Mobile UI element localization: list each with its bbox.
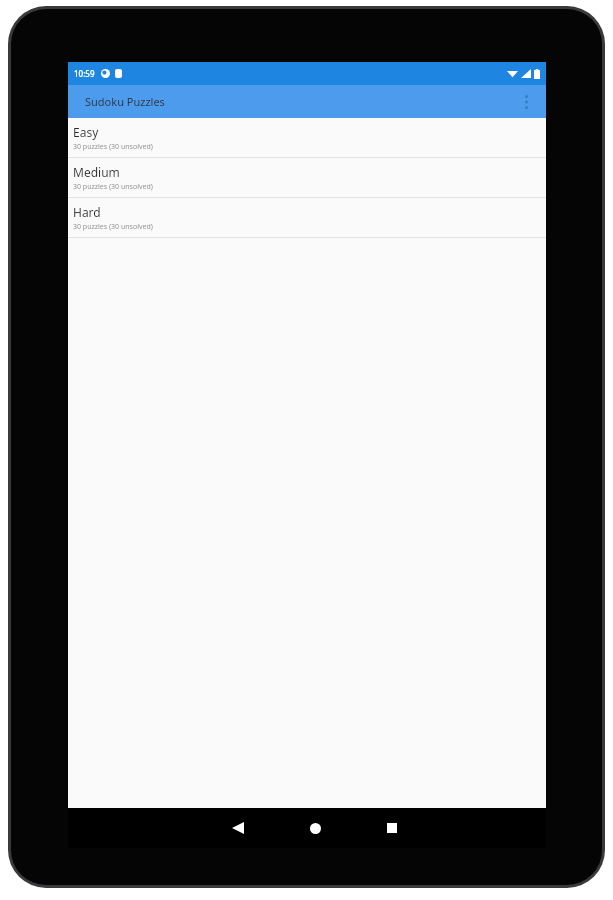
button[interactable]: Recent apps xyxy=(372,808,412,848)
staticText: Medium xyxy=(73,164,120,180)
button[interactable]: More options xyxy=(510,85,543,118)
staticText: 30 puzzles (30 unsolved) xyxy=(73,222,153,232)
button[interactable]: Medium xyxy=(68,158,546,198)
button[interactable]: Hard xyxy=(68,198,546,238)
button[interactable]: Home xyxy=(295,808,335,848)
staticText: 30 puzzles (30 unsolved) xyxy=(73,142,153,152)
staticText: 10:59 xyxy=(74,68,95,79)
button[interactable]: Easy xyxy=(68,118,546,158)
staticText: Sudoku Puzzles xyxy=(85,94,165,109)
button[interactable]: Back xyxy=(218,808,258,848)
staticText: 30 puzzles (30 unsolved) xyxy=(73,182,153,192)
staticText: Hard xyxy=(73,204,101,220)
staticText: Easy xyxy=(73,124,99,140)
